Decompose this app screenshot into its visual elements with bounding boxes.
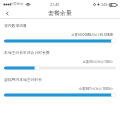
- staticText: 省内数据流量: [4, 23, 27, 28]
- staticText: 套餐余量: [48, 9, 72, 16]
- staticText: 本地主叫长市话合计时长费: [4, 50, 50, 55]
- staticText: 34%: [101, 2, 108, 7]
- staticText: 21:45: [50, 2, 60, 7]
- staticText: 余量30分/总计100分: [4, 59, 113, 64]
- staticText: 余量987分/总计1000分: [4, 86, 113, 91]
- staticText: 虚拟网内本地主叫时长: [4, 77, 42, 82]
- staticText: 余量50.00MB/总计50.00MB: [4, 32, 113, 37]
- button[interactable]: Back: [0, 8, 14, 18]
- staticText: 中国移动: [10, 2, 24, 6]
